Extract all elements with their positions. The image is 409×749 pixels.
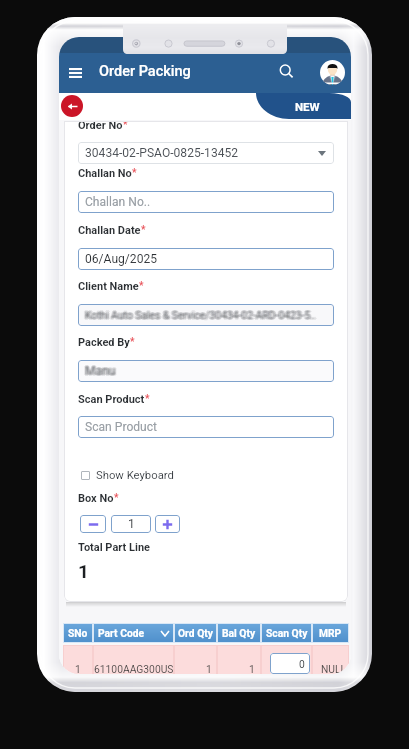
staticText: Kothi Auto Sales & Service/30434-02-ARD-… <box>86 310 317 322</box>
staticText: * <box>145 393 150 405</box>
staticText: Scan Product <box>85 420 158 434</box>
staticText: Kothi Auto Sales & Service/30434-02-ARD-… <box>85 309 316 321</box>
staticText: Bal Qty <box>222 627 256 639</box>
staticText: NEW <box>295 100 320 113</box>
staticText: * <box>114 492 119 504</box>
staticText: Scan Qty <box>266 627 308 639</box>
button[interactable]: Bal Qty <box>217 623 261 643</box>
staticText: Show Keyboard <box>96 469 174 482</box>
button[interactable]: Increase box number <box>155 515 180 533</box>
staticText: 1 <box>206 663 212 674</box>
staticText: Kothi Auto Sales & Service/30434-02-ARD-… <box>84 310 315 322</box>
staticText: Manu <box>86 363 117 377</box>
staticText: Manu <box>86 364 117 378</box>
staticText: 0 <box>299 658 305 670</box>
button[interactable]: Ord Qty <box>174 623 217 643</box>
staticText: Manu <box>85 365 116 379</box>
staticText: Part Code <box>98 627 145 639</box>
staticText: 1 <box>78 560 89 582</box>
button[interactable]: Open navigation menu <box>64 62 86 84</box>
staticText: Challan Date <box>78 224 141 237</box>
staticText: Client Name <box>78 280 139 293</box>
staticText: Ord Qty <box>178 627 213 639</box>
staticText: Manu <box>84 365 115 379</box>
staticText: SNo <box>68 627 88 639</box>
staticText: * <box>139 280 144 292</box>
button[interactable]: 30434-02-PSAO-0825-13452 <box>78 142 334 164</box>
button[interactable]: Scan Qty <box>261 623 312 643</box>
button[interactable]: Back <box>61 95 83 117</box>
staticText: 61100AAG300US <box>94 663 174 674</box>
staticText: * <box>141 224 146 236</box>
staticText: Manu <box>86 365 117 379</box>
button[interactable]: Search <box>274 59 298 83</box>
button[interactable]: Decrease box number <box>80 515 106 533</box>
staticText: 1 <box>249 663 255 674</box>
staticText: Challan No <box>78 167 132 180</box>
staticText: Total Part Line <box>78 541 150 554</box>
staticText: Manu <box>87 364 118 378</box>
button[interactable]: Part Code <box>93 623 174 643</box>
staticText: Kothi Auto Sales & Service/30434-02-ARD-… <box>84 308 315 320</box>
button[interactable]: 1 <box>111 515 151 533</box>
button[interactable]: 06/Aug/2025 <box>78 248 334 270</box>
button[interactable]: Manu <box>78 360 334 382</box>
staticText: 1 <box>75 663 81 674</box>
button[interactable]: Scan Product <box>78 416 334 438</box>
staticText: Manu <box>85 363 116 377</box>
staticText: Kothi Auto Sales & Service/30434-02-ARD-… <box>86 309 317 321</box>
button[interactable]: Kothi Auto Sales & Service/30434-02-ARD-… <box>78 304 334 326</box>
staticText: * <box>123 121 128 131</box>
staticText: Kothi Auto Sales & Service/30434-02-ARD-… <box>87 309 318 321</box>
staticText: Manu <box>84 364 115 378</box>
button[interactable]: Profile <box>320 60 345 85</box>
staticText: NULL <box>321 663 347 674</box>
staticText: Manu <box>84 363 115 377</box>
staticText: Order No <box>78 121 123 132</box>
staticText: Order Packing <box>99 63 191 80</box>
button[interactable]: MRP <box>312 623 349 643</box>
staticText: * <box>130 336 135 348</box>
button[interactable]: 0 <box>270 653 310 674</box>
staticText: * <box>132 167 137 179</box>
staticText: Box No <box>78 492 114 505</box>
staticText: 30434-02-PSAO-0825-13452 <box>85 146 239 160</box>
staticText: Kothi Auto Sales & Service/30434-02-ARD-… <box>85 310 316 322</box>
staticText: Packed By <box>78 336 130 349</box>
button[interactable]: SNo <box>63 623 93 643</box>
staticText: Scan Product <box>78 393 145 406</box>
staticText: Kothi Auto Sales & Service/30434-02-ARD-… <box>83 309 314 321</box>
button[interactable]: NEW <box>256 93 351 119</box>
staticText: Kothi Auto Sales & Service/30434-02-ARD-… <box>84 309 315 321</box>
staticText: 06/Aug/2025 <box>85 252 158 266</box>
staticText: Manu <box>85 364 116 378</box>
staticText: MRP <box>319 627 342 639</box>
staticText: Kothi Auto Sales & Service/30434-02-ARD-… <box>86 308 317 320</box>
staticText: Kothi Auto Sales & Service/30434-02-ARD-… <box>85 308 316 320</box>
staticText: 1 <box>128 517 135 531</box>
staticText: Manu <box>83 364 114 378</box>
button[interactable]: Show Keyboard <box>81 469 174 482</box>
staticText: Challan No.. <box>85 195 151 209</box>
button[interactable]: Challan No.. <box>78 191 334 213</box>
